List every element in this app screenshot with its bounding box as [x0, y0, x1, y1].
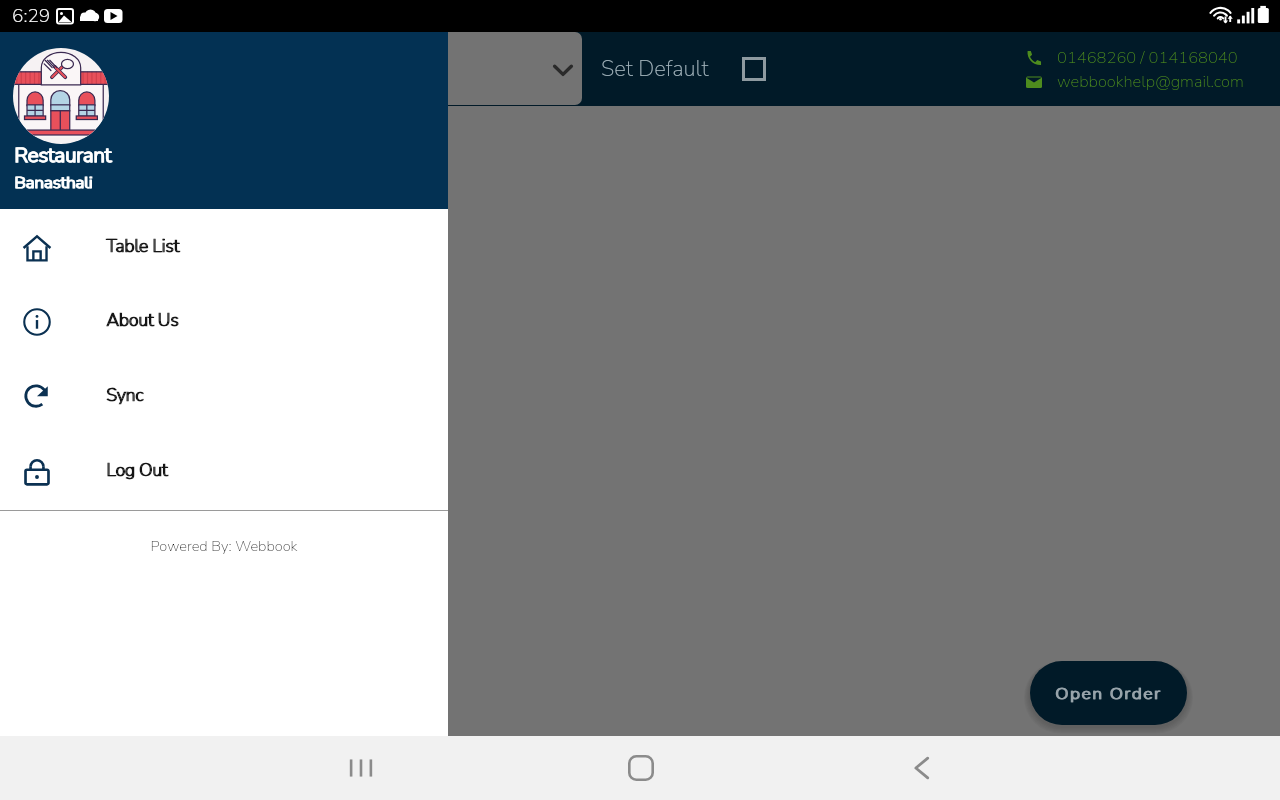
button[interactable]: Back [893, 736, 949, 800]
button[interactable]: Table List [0, 210, 448, 285]
button[interactable]: Open Order [1030, 661, 1187, 725]
staticText: Sync [106, 383, 143, 407]
staticText: Log Out [107, 458, 169, 482]
staticText: Table List [106, 234, 179, 258]
staticText: Restaurant [14, 141, 111, 169]
staticText: Banasthali [14, 171, 93, 194]
button[interactable]: Log Out [0, 434, 448, 509]
staticText: Powered By: Webbook [0, 536, 448, 556]
staticText: Restaurant [15, 141, 112, 169]
staticText: webbookhelp@gmail.com [1057, 70, 1244, 92]
staticText: 6:29 [12, 3, 51, 29]
staticText: Banasthali [15, 171, 94, 194]
staticText: Set Default [601, 54, 709, 84]
staticText: Open Order [1056, 682, 1163, 705]
button[interactable]: About Us [0, 284, 448, 359]
staticText: Log Out [106, 458, 168, 482]
staticText: About Us [106, 308, 179, 332]
button[interactable]: Sync [0, 359, 448, 434]
staticText: Open Order [1055, 682, 1162, 705]
button[interactable]: Home [613, 736, 669, 800]
button[interactable]: Set Default [736, 51, 772, 87]
staticText: Sync [107, 383, 144, 407]
staticText: About Us [107, 308, 180, 332]
staticText: Table List [107, 234, 180, 258]
button[interactable]: webbookhelp@gmail.com [1026, 71, 1244, 93]
button[interactable]: Recents [333, 736, 389, 800]
button[interactable]: Select table [448, 32, 582, 105]
button[interactable]: 01468260 / 014168040 [1026, 47, 1238, 69]
staticText: 01468260 / 014168040 [1057, 46, 1238, 68]
